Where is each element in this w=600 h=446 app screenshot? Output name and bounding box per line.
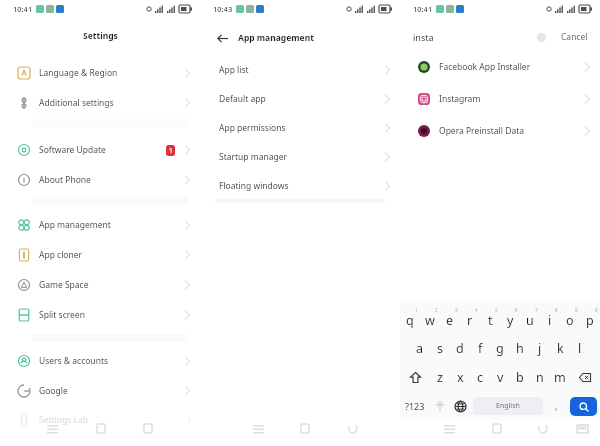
button[interactable]: m — [550, 363, 570, 392]
button[interactable]: App cloner — [0, 240, 200, 270]
button[interactable]: Recents — [249, 420, 267, 437]
button[interactable]: l — [570, 334, 590, 363]
staticText: r — [467, 312, 473, 329]
button[interactable]: Punctuation — [543, 392, 570, 420]
button[interactable]: o — [560, 306, 580, 334]
button[interactable]: p — [580, 306, 600, 334]
button[interactable]: s — [430, 334, 450, 363]
button[interactable]: q — [400, 306, 420, 334]
staticText: Settings Lab — [39, 414, 89, 426]
staticText: h — [516, 340, 524, 357]
button[interactable]: d — [450, 334, 470, 363]
button[interactable]: r — [460, 306, 480, 334]
button[interactable]: a — [410, 334, 430, 363]
staticText: 10:43 — [213, 4, 233, 14]
staticText: Google — [39, 385, 68, 397]
staticText: App list — [219, 64, 249, 76]
button[interactable]: About Phone — [0, 165, 200, 195]
staticText: t — [488, 312, 493, 329]
button[interactable]: Home — [296, 420, 314, 437]
button[interactable]: Recents — [43, 420, 61, 437]
button[interactable]: w — [420, 306, 440, 334]
button[interactable]: f — [470, 334, 490, 363]
staticText: 10:41 — [413, 4, 433, 14]
staticText: Settings — [83, 30, 118, 42]
staticText: About Phone — [39, 174, 91, 186]
button[interactable]: h — [510, 334, 530, 363]
button[interactable]: Backspace — [570, 363, 600, 392]
staticText: Floating windows — [219, 180, 289, 192]
staticText: x — [457, 369, 464, 386]
button[interactable]: Language & Region — [0, 58, 200, 88]
button[interactable]: Users & accounts — [0, 346, 200, 376]
button[interactable]: Recents — [440, 420, 458, 437]
button[interactable]: Cancel — [561, 31, 600, 43]
button[interactable]: App permissions — [200, 113, 400, 142]
button[interactable]: Facebook App Installer — [400, 51, 600, 83]
button[interactable]: j — [530, 334, 550, 363]
staticText: , — [555, 399, 558, 413]
button[interactable]: Google — [0, 376, 200, 406]
staticText: n — [536, 369, 544, 386]
button[interactable]: Change language — [450, 392, 470, 420]
staticText: q — [406, 312, 414, 329]
button[interactable]: k — [550, 334, 570, 363]
button[interactable]: Back — [534, 420, 552, 437]
button[interactable]: Default app — [200, 84, 400, 113]
button[interactable]: g — [490, 334, 510, 363]
button[interactable]: App list — [200, 55, 400, 84]
staticText: k — [557, 340, 564, 357]
button[interactable]: c — [470, 363, 490, 392]
staticText: Default app — [219, 93, 266, 105]
button[interactable]: Instagram — [400, 83, 600, 115]
button[interactable]: t — [480, 306, 500, 334]
button[interactable]: Back — [214, 30, 230, 46]
button[interactable]: Game Space — [0, 270, 200, 300]
button[interactable]: Home — [92, 420, 110, 437]
staticText: f — [478, 340, 483, 357]
staticText: App management — [238, 32, 314, 44]
staticText: c — [477, 369, 484, 386]
button[interactable]: Search — [570, 397, 597, 416]
button[interactable]: y — [500, 306, 520, 334]
button[interactable]: Settings Lab — [0, 406, 200, 434]
staticText: English — [496, 401, 520, 411]
button[interactable]: Home — [488, 420, 506, 437]
button[interactable]: Opera Preinstall Data — [400, 115, 600, 147]
button[interactable]: v — [490, 363, 510, 392]
button[interactable]: Shift — [400, 363, 430, 392]
staticText: Cancel — [561, 31, 588, 43]
button[interactable]: z — [430, 363, 450, 392]
button[interactable]: n — [530, 363, 550, 392]
button[interactable]: Additional settings — [0, 88, 200, 118]
button[interactable]: i — [540, 306, 560, 334]
button[interactable]: App management — [0, 210, 200, 240]
button[interactable]: b — [510, 363, 530, 392]
button[interactable]: e — [440, 306, 460, 334]
button[interactable]: Emoji — [430, 392, 450, 420]
staticText: j — [538, 340, 542, 357]
staticText: 0 — [595, 307, 598, 313]
staticText: ?123 — [405, 400, 425, 412]
button[interactable]: English — [473, 397, 543, 415]
staticText: m — [554, 369, 566, 386]
staticText: z — [437, 369, 443, 386]
button[interactable]: Back — [344, 420, 362, 437]
staticText: Users & accounts — [39, 355, 109, 367]
button[interactable]: ?123 — [400, 392, 430, 420]
button[interactable]: Hide keyboard — [573, 420, 591, 437]
button[interactable]: Software Update — [0, 135, 200, 165]
button[interactable]: x — [450, 363, 470, 392]
staticText: 10:41 — [13, 4, 33, 14]
staticText: Split screen — [39, 309, 85, 321]
staticText: l — [578, 340, 582, 357]
staticText: d — [456, 340, 464, 357]
button[interactable]: Back — [139, 420, 157, 437]
button[interactable]: Startup manager — [200, 142, 400, 171]
staticText: b — [516, 369, 524, 386]
button[interactable]: Clear text — [533, 29, 549, 45]
button[interactable]: Split screen — [0, 300, 200, 330]
button[interactable]: u — [520, 306, 540, 334]
button[interactable]: Floating windows — [200, 171, 400, 200]
staticText: g — [496, 340, 504, 357]
